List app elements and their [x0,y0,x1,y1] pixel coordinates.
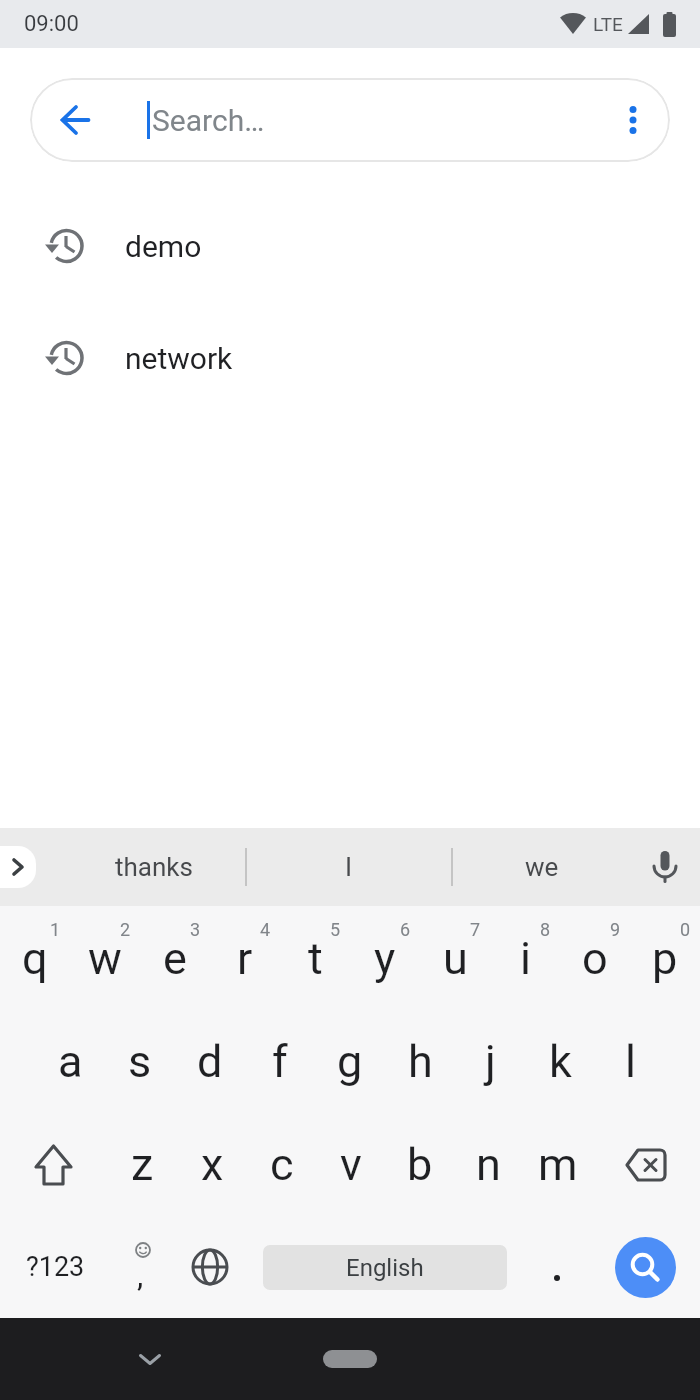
staticText: u [443,932,468,985]
button[interactable]: z [107,1113,177,1216]
button[interactable]: c [247,1113,316,1216]
staticText: 9 [610,919,621,940]
button[interactable]: we [453,828,630,906]
button[interactable]: g [315,1010,385,1113]
staticText: s [128,1035,152,1088]
staticText: e [163,932,187,985]
button[interactable]: y [350,906,420,1010]
button[interactable]: e [140,906,210,1010]
staticText: d [197,1035,223,1088]
button[interactable] [590,1216,700,1318]
button[interactable]: l [595,1010,665,1113]
button[interactable]: v [316,1113,385,1216]
button[interactable]: ?123 [0,1216,110,1318]
staticText: b [407,1138,433,1191]
staticText: g [337,1035,363,1088]
button[interactable]: demo [0,190,700,302]
staticText: Search… [152,103,265,138]
staticText: i [520,932,531,985]
staticText: c [270,1138,294,1191]
button[interactable] [612,99,654,141]
staticText: v [340,1138,362,1191]
staticText: n [476,1138,501,1191]
button[interactable]: Search… [30,78,670,162]
staticText: 3 [190,919,201,940]
staticText: w [88,932,122,985]
button[interactable]: a [35,1010,105,1113]
staticText: ?123 [26,1251,85,1283]
staticText: 1 [50,919,61,940]
staticText: o [582,932,608,985]
button[interactable]: p [630,906,700,1010]
button[interactable]: f [245,1010,315,1113]
staticText: p [652,932,678,985]
staticText: x [201,1138,224,1191]
button[interactable] [630,828,700,906]
button[interactable]: k [525,1010,595,1113]
staticText: l [625,1035,636,1088]
staticText: network [125,341,233,376]
button[interactable] [128,1337,172,1381]
button[interactable]: s [105,1010,175,1113]
staticText: r [237,932,253,985]
button[interactable]: network [0,302,700,414]
staticText: 09:00 [24,11,79,37]
staticText: English [346,1254,424,1282]
staticText: I [345,852,353,882]
staticText: m [538,1138,578,1191]
button[interactable] [52,97,98,143]
button[interactable]: o [560,906,630,1010]
staticText: 8 [540,919,551,940]
button[interactable]: w [70,906,140,1010]
staticText: 7 [470,919,481,940]
staticText: t [308,932,323,985]
button[interactable]: j [455,1010,525,1113]
staticText: z [131,1138,154,1191]
button[interactable]: i [490,906,560,1010]
staticText: 4 [260,919,271,940]
staticText: 2 [120,919,131,940]
button[interactable] [175,1216,245,1318]
button[interactable]: thanks [62,828,245,906]
staticText: k [549,1035,572,1088]
button[interactable]: u [420,906,490,1010]
button[interactable] [520,1216,590,1318]
button[interactable]: m [523,1113,592,1216]
staticText: f [272,1035,288,1088]
staticText: q [22,932,48,985]
button[interactable]: x [177,1113,247,1216]
staticText: 5 [330,919,341,940]
button[interactable]: I [247,828,451,906]
button[interactable]: , [110,1216,175,1318]
staticText: j [485,1035,496,1088]
button[interactable] [0,846,36,888]
button[interactable]: n [454,1113,523,1216]
staticText: h [408,1035,433,1088]
staticText: a [58,1035,83,1088]
button[interactable]: t [280,906,350,1010]
button[interactable]: h [385,1010,455,1113]
staticText: LTE [593,13,623,35]
button[interactable] [592,1113,700,1216]
button[interactable]: r [210,906,280,1010]
staticText: , [137,1256,144,1294]
staticText: we [525,852,559,882]
staticText: 0 [680,919,691,940]
button[interactable] [0,1113,107,1216]
staticText: y [374,932,396,985]
staticText: 6 [400,919,411,940]
button[interactable] [323,1350,377,1368]
staticText: thanks [115,852,193,882]
button[interactable]: q [0,906,70,1010]
button[interactable]: English [263,1245,507,1290]
staticText: demo [125,229,202,264]
button[interactable]: d [175,1010,245,1113]
button[interactable]: b [385,1113,454,1216]
